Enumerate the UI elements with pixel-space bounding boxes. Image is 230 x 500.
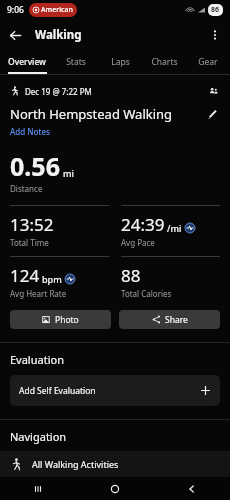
- staticText: Laps: [111, 56, 130, 68]
- button[interactable]: Stats: [54, 50, 98, 74]
- staticText: /mi: [167, 222, 182, 234]
- staticText: Gear: [198, 56, 218, 68]
- staticText: mi: [63, 167, 74, 179]
- staticText: bpm: [42, 273, 62, 285]
- staticText: 24:39: [121, 213, 165, 236]
- button[interactable]: Overview: [0, 50, 54, 74]
- button[interactable]: Add Self Evaluation: [10, 375, 220, 406]
- staticText: Photo: [55, 314, 79, 326]
- staticText: Stats: [66, 56, 86, 68]
- button[interactable]: All Walking Activities: [0, 451, 230, 477]
- button[interactable]: Charts: [142, 50, 186, 74]
- staticText: Walking: [35, 27, 82, 43]
- button[interactable]: Home: [76, 477, 153, 500]
- button[interactable]: Back: [153, 477, 230, 500]
- button[interactable]: Edit: [204, 106, 220, 122]
- staticText: Total Calories: [121, 288, 172, 299]
- staticText: 0.56: [10, 149, 60, 183]
- staticText: Add Self Evaluation: [19, 385, 96, 397]
- staticText: Avg Pace: [121, 237, 155, 248]
- staticText: Avg Heart Rate: [10, 288, 67, 299]
- staticText: Overview: [8, 56, 46, 68]
- button[interactable]: Recents: [0, 477, 76, 500]
- staticText: Share: [165, 314, 188, 326]
- staticText: 124: [10, 264, 40, 287]
- staticText: Dec 19 @ 7:22 PM: [25, 86, 92, 97]
- staticText: All Walking Activities: [32, 458, 119, 470]
- button[interactable]: Share: [119, 310, 220, 329]
- staticText: 88: [121, 264, 141, 287]
- button[interactable]: Gear: [186, 50, 230, 74]
- staticText: 13:52: [10, 213, 54, 236]
- staticText: 9:06: [7, 4, 24, 16]
- button[interactable]: Photo: [10, 310, 111, 329]
- button[interactable]: Add Notes: [10, 126, 50, 137]
- staticText: American: [41, 5, 73, 15]
- button[interactable]: Back: [0, 20, 30, 50]
- button[interactable]: More options: [200, 20, 230, 50]
- staticText: Total Time: [10, 237, 49, 248]
- button[interactable]: Laps: [98, 50, 142, 74]
- staticText: Distance: [10, 183, 43, 194]
- staticText: Evaluation: [10, 352, 64, 367]
- staticText: Add Notes: [10, 126, 50, 137]
- staticText: 86: [211, 5, 220, 15]
- staticText: Navigation: [10, 429, 67, 444]
- button[interactable]: Add people: [206, 84, 220, 98]
- staticText: Charts: [151, 56, 178, 68]
- staticText: North Hempstead Walking: [10, 105, 204, 123]
